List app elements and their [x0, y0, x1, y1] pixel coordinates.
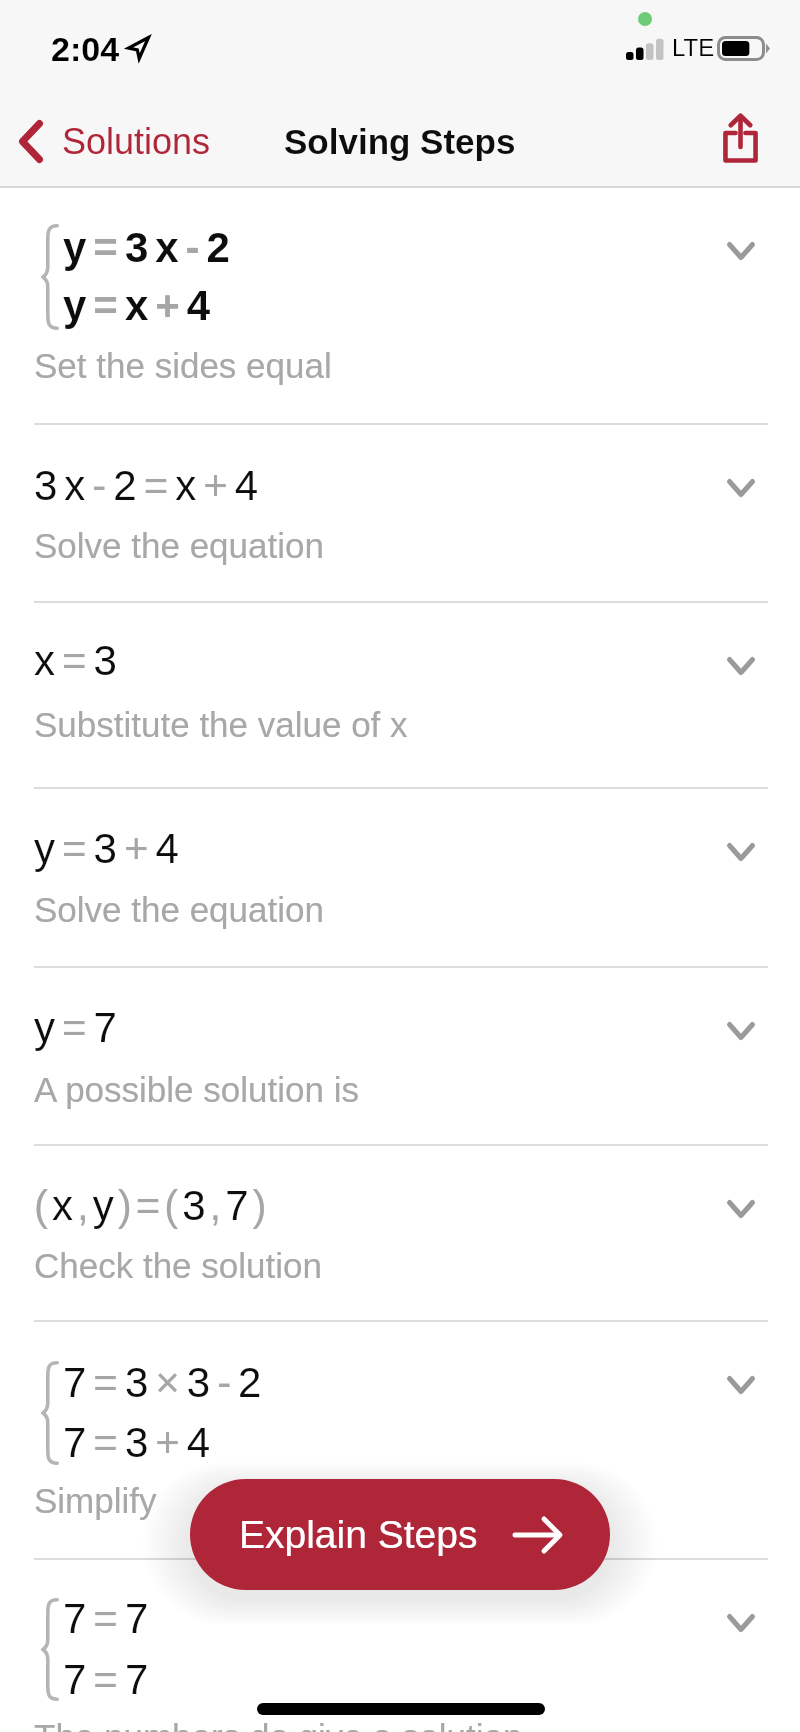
button[interactable]: Expand step: [709, 1591, 773, 1655]
staticText: 7=3×3-2: [63, 1359, 269, 1406]
staticText: y=7: [34, 1004, 124, 1051]
staticText: y=x+4: [63, 282, 218, 329]
button[interactable]: Expand step: [709, 820, 773, 884]
button[interactable]: Expand step: [709, 634, 773, 698]
staticText: Simplify: [34, 1481, 157, 1520]
staticText: Set the sides equal: [34, 346, 332, 385]
button[interactable]: Expand step: [709, 1177, 773, 1241]
button[interactable]: Solutions: [8, 95, 224, 188]
staticText: 7=7: [63, 1656, 156, 1703]
staticText: Substitute the value of x: [34, 705, 408, 744]
staticText: y=3+4: [34, 825, 186, 872]
staticText: Solving Steps: [284, 122, 516, 161]
staticText: Solve the equation: [34, 890, 324, 929]
button[interactable]: Expand step: [709, 999, 773, 1063]
staticText: 2:04: [51, 30, 120, 68]
staticText: 7=3+4: [63, 1419, 218, 1466]
staticText: (x,y)=(3,7): [34, 1182, 271, 1229]
button[interactable]: y=3+4: [0, 789, 800, 968]
button[interactable]: 7=3×3-2: [0, 1322, 800, 1560]
button[interactable]: y=3x-2: [0, 188, 800, 425]
staticText: y=3x-2: [63, 224, 237, 271]
button[interactable]: (x,y)=(3,7): [0, 1146, 800, 1322]
staticText: Solve the equation: [34, 526, 324, 565]
button[interactable]: Explain Steps: [190, 1479, 610, 1590]
button[interactable]: Expand step: [709, 456, 773, 520]
staticText: Check the solution: [34, 1246, 322, 1285]
staticText: The numbers do give a solution: [34, 1717, 523, 1732]
staticText: Explain Steps: [239, 1513, 478, 1557]
button[interactable]: Expand step: [709, 1353, 773, 1417]
staticText: 3x-2=x+4: [34, 462, 266, 509]
staticText: LTE: [672, 34, 715, 61]
button[interactable]: Share: [706, 95, 774, 188]
button[interactable]: y=7: [0, 968, 800, 1146]
staticText: 7=7: [63, 1595, 156, 1642]
button[interactable]: Expand step: [709, 219, 773, 283]
button[interactable]: x=3: [0, 603, 800, 789]
staticText: Solutions: [62, 121, 211, 161]
staticText: A possible solution is: [34, 1070, 359, 1109]
button[interactable]: 3x-2=x+4: [0, 425, 800, 603]
button[interactable]: 7=7: [0, 1560, 800, 1732]
staticText: x=3: [34, 637, 124, 684]
